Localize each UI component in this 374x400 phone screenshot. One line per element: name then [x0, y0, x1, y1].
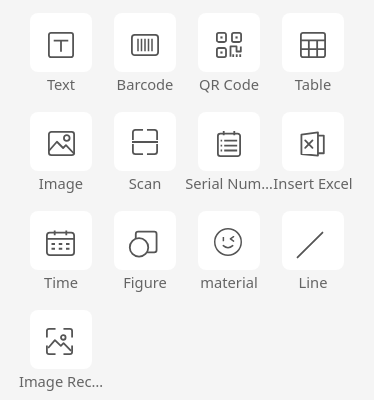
button[interactable]: Serial Num… — [187, 112, 271, 193]
button[interactable]: Table — [271, 13, 355, 94]
staticText: Scan — [99, 173, 191, 193]
staticText: Table — [267, 74, 359, 94]
staticText: Serial Num… — [183, 173, 275, 193]
button[interactable]: Scan — [103, 112, 187, 193]
button[interactable]: QR Code — [187, 13, 271, 94]
staticText: Line — [267, 272, 359, 292]
staticText: material — [183, 272, 275, 292]
staticText: QR Code — [183, 74, 275, 94]
button[interactable]: Line — [271, 211, 355, 292]
staticText: Figure — [99, 272, 191, 292]
staticText: Time — [15, 272, 107, 292]
button[interactable]: material — [187, 211, 271, 292]
staticText: Image Rec… — [15, 371, 107, 391]
button[interactable]: Insert Excel — [271, 112, 355, 193]
staticText: Text — [15, 74, 107, 94]
button[interactable]: Figure — [103, 211, 187, 292]
button[interactable]: Text — [19, 13, 103, 94]
staticText: Barcode — [99, 74, 191, 94]
button[interactable]: Barcode — [103, 13, 187, 94]
button[interactable]: Time — [19, 211, 103, 292]
button[interactable]: Image Rec… — [19, 310, 103, 391]
button[interactable]: Image — [19, 112, 103, 193]
staticText: Insert Excel — [267, 173, 359, 193]
staticText: Image — [15, 173, 107, 193]
